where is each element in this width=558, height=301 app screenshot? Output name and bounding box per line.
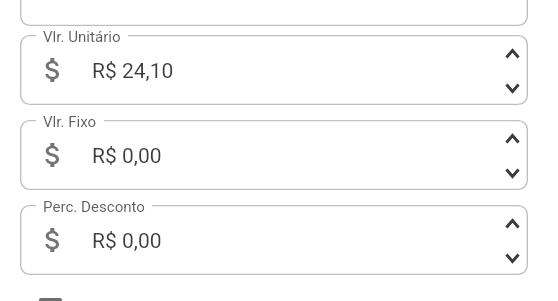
button[interactable]: R$ 0,00 [20, 120, 528, 190]
button[interactable]: Increase value [497, 207, 528, 241]
button[interactable]: Vlr. Fixo [43, 113, 97, 131]
button[interactable]: Toggle [39, 298, 62, 301]
button[interactable]: R$ 24,10 [20, 35, 528, 105]
button[interactable]: Decrease value [497, 156, 528, 190]
staticText: Vlr. Fixo [43, 113, 97, 131]
staticText: Vlr. Unitário [43, 28, 121, 46]
staticText: Perc. Desconto [43, 198, 145, 216]
button[interactable] [20, 0, 528, 26]
button[interactable]: Increase value [497, 122, 528, 156]
staticText: R$ 0,00 [92, 144, 162, 169]
staticText: R$ 0,00 [92, 229, 162, 254]
button[interactable]: Decrease value [497, 71, 528, 105]
button[interactable]: Increase value [497, 37, 528, 71]
staticText: R$ 24,10 [92, 59, 174, 84]
button[interactable]: Decrease value [497, 241, 528, 275]
button[interactable]: Perc. Desconto [43, 198, 145, 216]
button[interactable]: Vlr. Unitário [43, 28, 121, 46]
button[interactable]: R$ 0,00 [20, 205, 528, 275]
